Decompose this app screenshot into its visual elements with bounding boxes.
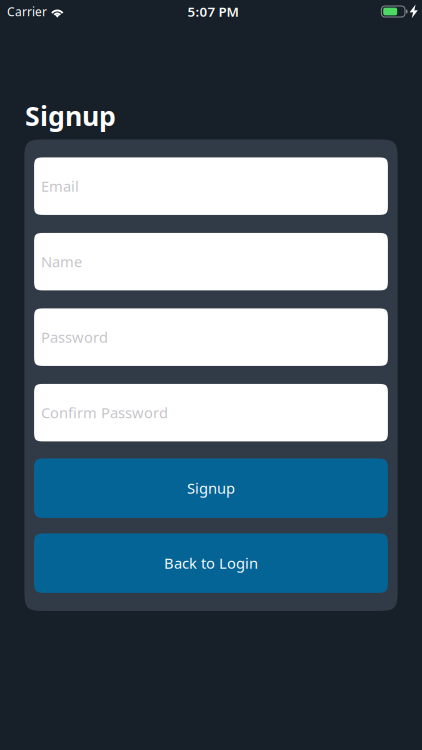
button[interactable]: Back to Login: [34, 533, 388, 593]
button[interactable]: Signup: [34, 458, 388, 518]
button[interactable]: Name: [34, 233, 388, 290]
button[interactable]: Confirm Password: [34, 384, 388, 441]
staticText: Signup: [187, 478, 235, 498]
button[interactable]: Password: [34, 308, 388, 366]
staticText: Back to Login: [164, 553, 258, 573]
staticText: Carrier: [7, 3, 47, 19]
staticText: Email: [41, 176, 79, 196]
staticText: Name: [41, 252, 82, 271]
staticText: Signup: [25, 98, 116, 133]
staticText: Password: [41, 327, 108, 347]
staticText: 5:07 PM: [187, 3, 238, 20]
button[interactable]: Email: [34, 157, 388, 215]
staticText: Confirm Password: [41, 403, 168, 422]
